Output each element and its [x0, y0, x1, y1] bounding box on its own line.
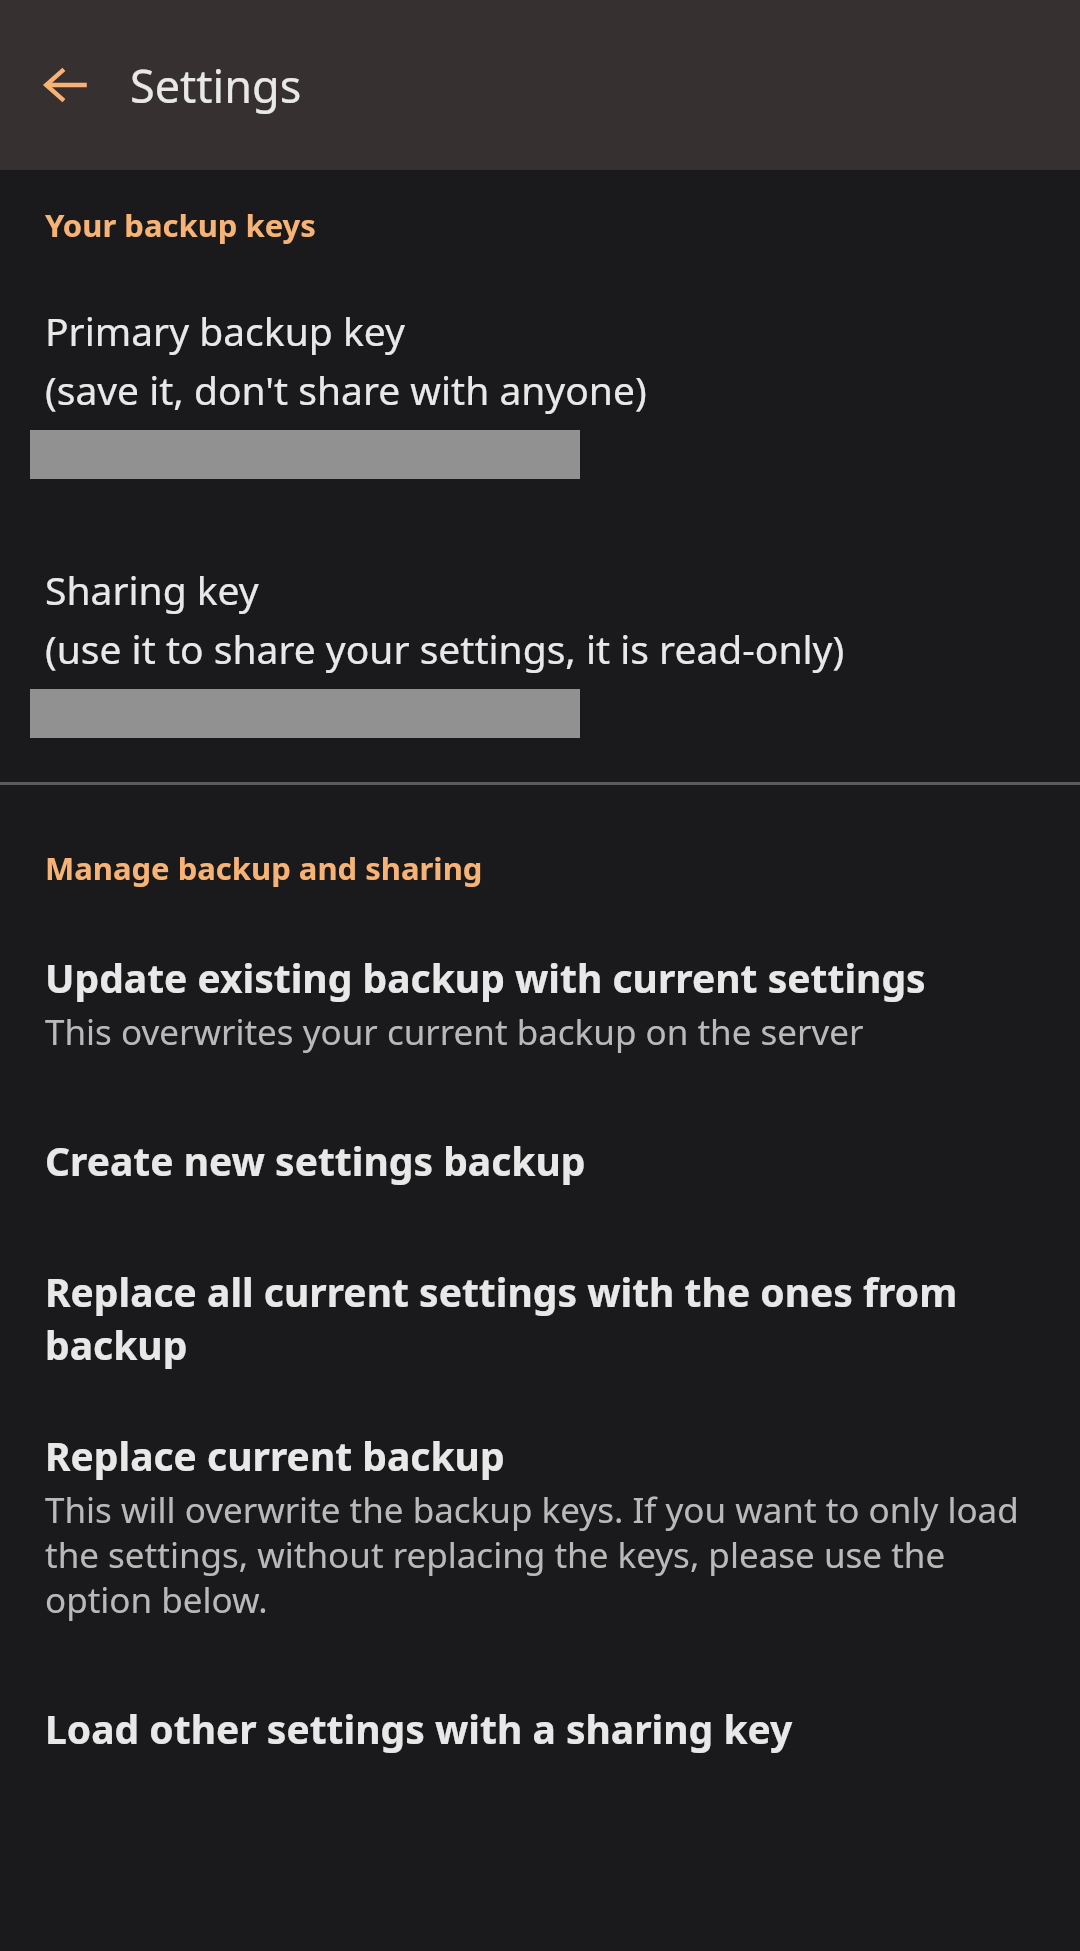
button[interactable]: Replace current backup: [0, 1429, 1080, 1624]
staticText: (use it to share your settings, it is re…: [45, 622, 845, 675]
button[interactable]: Sharing key: [0, 563, 1080, 738]
staticText: Update existing backup with current sett…: [45, 951, 926, 1004]
button[interactable]: Create new settings backup: [0, 1134, 1080, 1187]
button[interactable]: Load other settings with a sharing key: [0, 1702, 1080, 1755]
staticText: Replace current backup: [45, 1429, 505, 1482]
staticText: This overwrites your current backup on t…: [45, 1008, 864, 1056]
staticText: Settings: [130, 55, 302, 116]
staticText: Replace all current settings with the on…: [45, 1265, 1040, 1371]
staticText: Primary backup key: [45, 304, 405, 357]
staticText: Sharing key: [45, 563, 259, 616]
staticText: Load other settings with a sharing key: [45, 1702, 793, 1755]
button[interactable]: Back: [30, 49, 102, 121]
staticText: Your backup keys: [45, 204, 316, 246]
button[interactable]: Replace all current settings with the on…: [0, 1265, 1080, 1371]
staticText: This will overwrite the backup keys. If …: [45, 1486, 1040, 1624]
staticText: Create new settings backup: [45, 1134, 586, 1187]
staticText: (save it, don't share with anyone): [45, 363, 647, 416]
button[interactable]: Primary backup key: [0, 304, 1080, 479]
staticText: Manage backup and sharing: [45, 847, 483, 889]
button[interactable]: Update existing backup with current sett…: [0, 951, 1080, 1056]
